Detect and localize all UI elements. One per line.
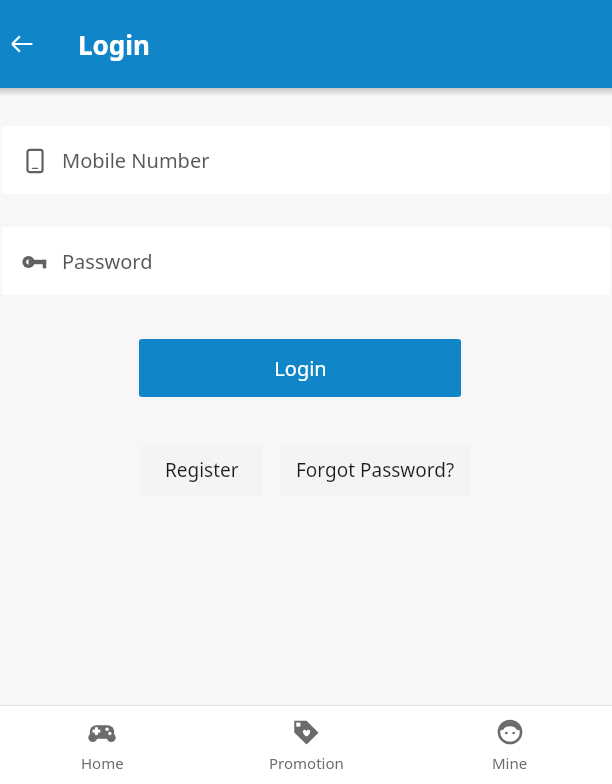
staticText: Mine [492, 753, 528, 773]
staticText: Register [165, 457, 239, 483]
button[interactable]: Register [141, 444, 262, 496]
button[interactable]: Mobile Number [2, 126, 610, 194]
staticText: Login [274, 355, 327, 382]
staticText: Mobile Number [62, 147, 210, 174]
staticText: Password [62, 248, 153, 275]
button[interactable]: Promotion [204, 706, 408, 784]
button[interactable]: Password [2, 227, 610, 295]
button[interactable]: Forgot Password? [281, 444, 470, 496]
button[interactable]: Login [139, 339, 461, 397]
button[interactable]: Back [2, 24, 42, 64]
button[interactable]: Home [0, 706, 204, 784]
staticText: Home [81, 753, 124, 773]
staticText: Forgot Password? [296, 457, 455, 483]
staticText: Login [78, 27, 150, 62]
staticText: Promotion [269, 753, 344, 773]
button[interactable]: Mine [408, 706, 612, 784]
